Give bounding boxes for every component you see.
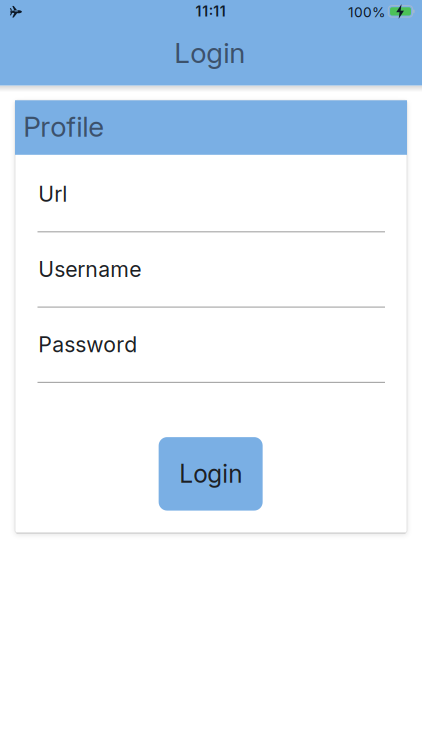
staticText: Password [38, 332, 137, 357]
staticText: 100% [348, 4, 385, 21]
button[interactable]: Url [37, 157, 385, 232]
button[interactable]: Username [37, 232, 385, 308]
staticText: Profile [23, 110, 104, 144]
staticText: Login [174, 36, 245, 70]
staticText: Login [179, 459, 242, 489]
staticText: Url [38, 181, 67, 207]
button[interactable]: Login [159, 437, 263, 511]
staticText: Username [38, 256, 141, 282]
button[interactable]: Password [37, 308, 385, 383]
staticText: 11:11 [196, 3, 226, 20]
